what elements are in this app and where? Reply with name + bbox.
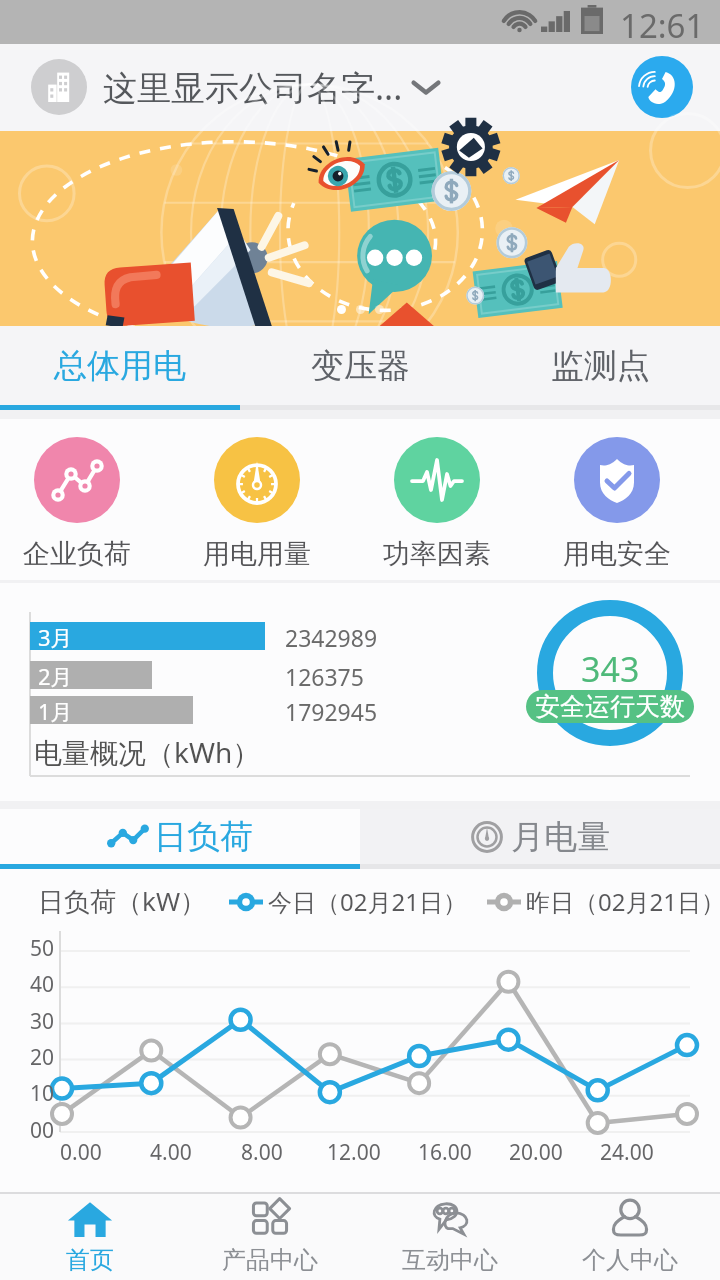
staticText: 10 — [30, 1079, 55, 1108]
button[interactable]: 功率因素 — [377, 437, 497, 571]
staticText: 昨日（02月21日） — [526, 885, 720, 918]
button[interactable]: 产品中心 — [200, 1199, 340, 1280]
button[interactable]: 首页 — [20, 1199, 160, 1280]
button[interactable] — [0, 131, 720, 326]
staticText: 产品中心 — [222, 1245, 318, 1275]
staticText: 20 — [30, 1043, 55, 1072]
button[interactable]: 个人中心 — [560, 1199, 700, 1280]
staticText: 日负荷 — [154, 816, 253, 858]
button[interactable]: 用电安全 — [557, 437, 677, 571]
staticText: 今日（02月21日） — [268, 885, 467, 918]
staticText: 个人中心 — [582, 1245, 678, 1275]
button[interactable]: 月电量 — [360, 809, 720, 864]
button[interactable]: 日负荷 — [0, 809, 360, 864]
staticText: 343 — [581, 646, 640, 692]
staticText: 3月 — [38, 622, 73, 650]
button[interactable]: 监测点 — [480, 326, 720, 405]
staticText: 月电量 — [511, 816, 610, 858]
staticText: 总体用电 — [54, 345, 186, 387]
staticText: 1792945 — [285, 696, 378, 724]
button[interactable]: 总体用电 — [0, 326, 240, 405]
staticText: 20.00 — [509, 1138, 563, 1167]
staticText: 安全运行天数 — [535, 691, 685, 722]
staticText: 日负荷（kW） — [38, 883, 207, 919]
staticText: 50 — [30, 934, 55, 963]
staticText: 互动中心 — [402, 1245, 498, 1275]
staticText: 用电安全 — [563, 537, 671, 571]
staticText: 变压器 — [311, 345, 410, 387]
staticText: 4.00 — [150, 1138, 192, 1167]
staticText: 24.00 — [600, 1138, 654, 1167]
staticText: 电量概况（kWh） — [34, 733, 261, 771]
staticText: 首页 — [66, 1245, 114, 1275]
staticText: 2342989 — [285, 622, 378, 650]
staticText: 1月 — [38, 696, 73, 724]
staticText: 功率因素 — [383, 537, 491, 571]
staticText: 这里显示公司名字... — [103, 64, 403, 110]
staticText: 2月 — [38, 661, 73, 689]
button[interactable]: 这里显示公司名字... — [31, 59, 440, 115]
staticText: 30 — [30, 1007, 55, 1036]
staticText: 126375 — [285, 661, 364, 689]
staticText: 12:61 — [620, 3, 705, 47]
staticText: 12.00 — [327, 1138, 381, 1167]
staticText: 00 — [30, 1116, 55, 1145]
button[interactable]: 用电用量 — [197, 437, 317, 571]
staticText: 用电用量 — [203, 537, 311, 571]
staticText: 企业负荷 — [23, 537, 131, 571]
staticText: 16.00 — [418, 1138, 472, 1167]
staticText: 8.00 — [241, 1138, 283, 1167]
button[interactable]: 企业负荷 — [17, 437, 137, 571]
button[interactable]: 变压器 — [240, 326, 480, 405]
button[interactable]: 互动中心 — [380, 1199, 520, 1280]
staticText: 0.00 — [60, 1138, 102, 1167]
staticText: 40 — [30, 970, 55, 999]
button[interactable]: Call — [631, 56, 693, 118]
staticText: 监测点 — [551, 345, 650, 387]
